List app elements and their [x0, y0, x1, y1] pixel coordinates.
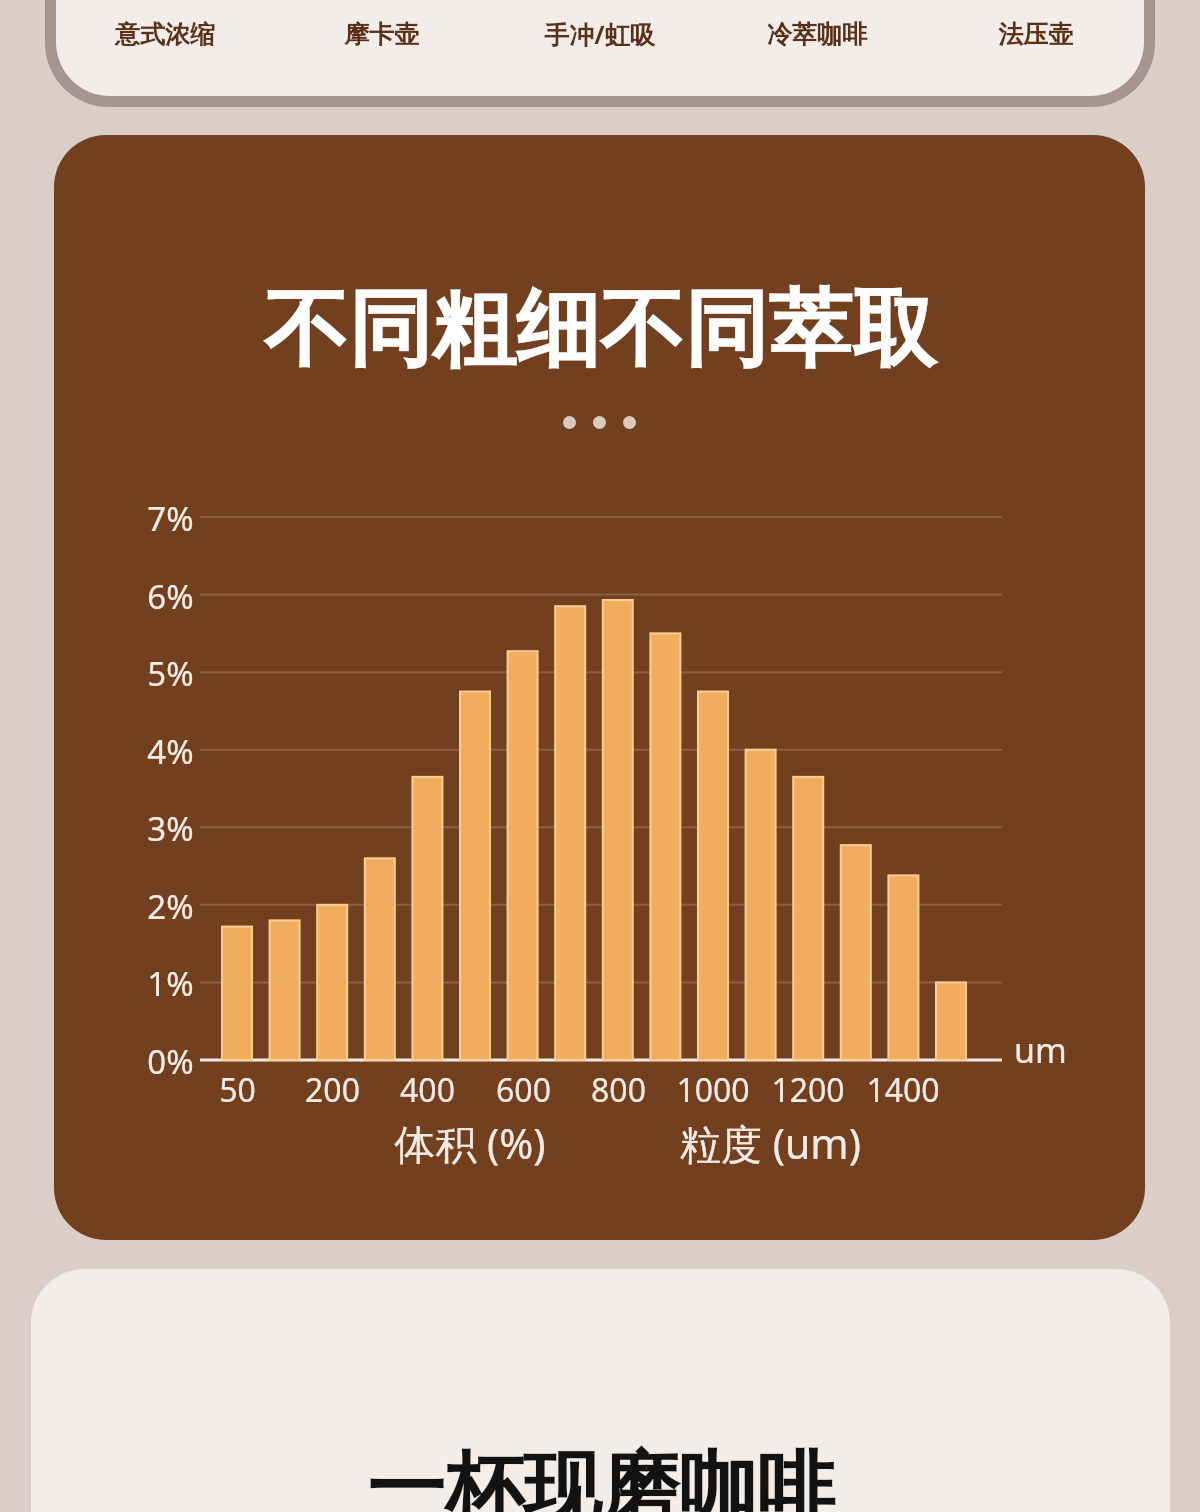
staticText: 6%	[147, 574, 194, 619]
button[interactable]: 摩卡壶	[273, 9, 490, 59]
button[interactable]: 意式浓缩	[56, 9, 273, 59]
staticText: 1400	[866, 1068, 940, 1112]
staticText: 3%	[147, 806, 194, 851]
staticText: 4%	[147, 729, 194, 774]
button[interactable]: 手冲/虹吸	[490, 9, 708, 59]
staticText: 400	[400, 1068, 455, 1112]
staticText: 7%	[147, 496, 194, 541]
staticText: 800	[591, 1068, 646, 1112]
staticText: 0%	[147, 1039, 194, 1084]
staticText: 一杯现磨咖啡	[367, 1440, 835, 1512]
staticText: 2%	[147, 884, 194, 929]
staticText: 不同粗细不同萃取	[264, 277, 936, 383]
staticText: 50	[219, 1068, 256, 1112]
button[interactable]: 一杯现磨咖啡	[31, 1269, 1170, 1512]
staticText: 600	[496, 1068, 551, 1112]
staticText: 意式浓缩	[115, 19, 215, 50]
staticText: 摩卡壶	[344, 19, 419, 50]
staticText: 手冲/虹吸	[544, 17, 655, 51]
staticText: 法压壶	[998, 19, 1073, 50]
staticText: 1000	[676, 1068, 750, 1112]
staticText: um	[1014, 1027, 1067, 1073]
staticText: 粒度 (um)	[680, 1115, 861, 1171]
button[interactable]: 法压壶	[926, 9, 1144, 59]
button[interactable]: 不同粗细不同萃取	[54, 135, 1145, 1240]
button[interactable]: 冷萃咖啡	[708, 9, 926, 59]
staticText: 冷萃咖啡	[767, 19, 867, 50]
staticText: 1200	[771, 1068, 845, 1112]
staticText: 200	[305, 1068, 360, 1112]
staticText: 5%	[147, 651, 194, 696]
staticText: 1%	[147, 961, 194, 1006]
staticText: 体积 (%)	[394, 1115, 546, 1171]
